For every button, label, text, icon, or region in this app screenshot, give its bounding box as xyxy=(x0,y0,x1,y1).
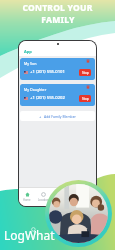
staticText: +1 (201) 555-0101 xyxy=(30,69,65,75)
staticText: Add Family Member xyxy=(44,114,76,119)
staticText: Chat xyxy=(56,198,62,202)
button[interactable]: My Son xyxy=(20,58,95,80)
staticText: + xyxy=(39,114,42,119)
button[interactable]: Delete xyxy=(86,85,90,89)
button[interactable]: + xyxy=(20,111,95,121)
button[interactable]: Home xyxy=(19,188,35,206)
staticText: Location xyxy=(38,198,49,202)
staticText: +1 (201) 555-0202 xyxy=(30,95,65,101)
button[interactable]: Chat xyxy=(51,188,66,206)
staticText: App xyxy=(24,49,32,54)
button[interactable]: Alerts xyxy=(66,188,81,206)
staticText: LogWhat xyxy=(4,227,55,243)
staticText: CONTROL YOUR xyxy=(22,2,93,14)
button[interactable]: Stop xyxy=(79,69,91,76)
staticText: My Daughter xyxy=(24,87,47,92)
staticText: My Son xyxy=(24,61,37,66)
staticText: Alerts xyxy=(70,198,78,202)
staticText: Stop xyxy=(82,71,89,75)
staticText: Home xyxy=(23,198,31,202)
button[interactable]: My Daughter xyxy=(20,84,95,106)
staticText: FAMILY xyxy=(41,14,75,26)
button[interactable]: Delete xyxy=(86,59,90,63)
staticText: Stop xyxy=(82,97,89,101)
button[interactable]: Profile xyxy=(81,188,96,206)
button[interactable]: Location xyxy=(35,188,51,206)
button[interactable]: Stop xyxy=(79,95,91,102)
staticText: Profile xyxy=(85,198,93,202)
